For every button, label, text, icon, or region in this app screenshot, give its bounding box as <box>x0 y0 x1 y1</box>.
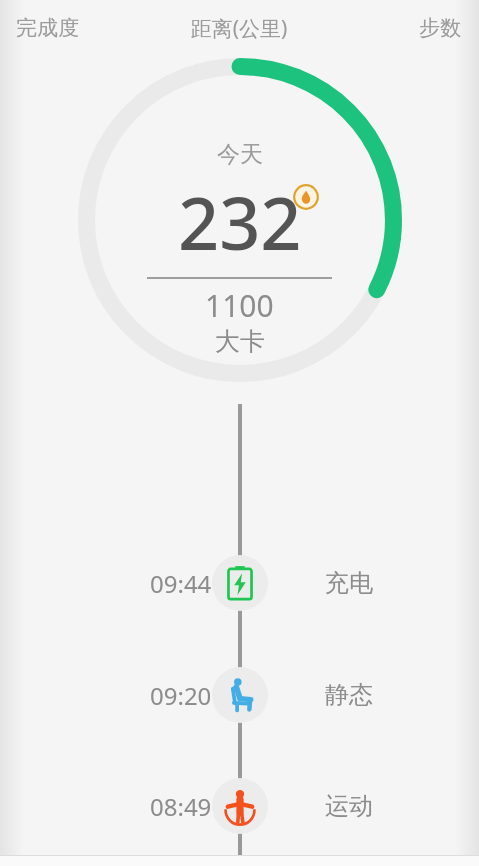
staticText: 08:49 <box>150 790 212 823</box>
other: Calories <box>293 184 319 210</box>
staticText: 大卡 <box>215 326 265 357</box>
staticText: 今天 <box>217 140 263 169</box>
staticText: 运动 <box>325 791 373 821</box>
staticText: 步数 <box>319 15 461 41</box>
button[interactable]: 步数 <box>319 0 479 56</box>
staticText: 232 <box>178 173 302 271</box>
button[interactable]: 09:44 <box>0 543 479 623</box>
staticText: 距离(公里) <box>159 14 319 43</box>
button[interactable]: 距离(公里) <box>159 0 319 56</box>
button[interactable]: 完成度 <box>0 0 159 56</box>
staticText: 1100 <box>205 285 274 326</box>
staticText: 充电 <box>325 568 373 598</box>
staticText: 09:44 <box>150 567 212 600</box>
staticText: 完成度 <box>16 15 159 41</box>
staticText: 09:20 <box>150 679 212 712</box>
button[interactable]: 09:20 <box>0 655 479 735</box>
button[interactable]: 08:49 <box>0 766 479 846</box>
staticText: 静态 <box>325 680 373 710</box>
